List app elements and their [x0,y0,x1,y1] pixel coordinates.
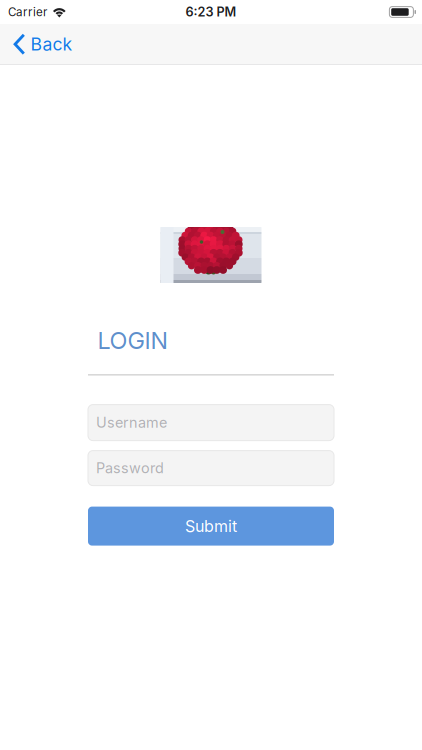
staticText: Password [96,459,164,477]
button[interactable]: Submit [88,507,334,546]
staticText: Carrier [8,5,47,19]
staticText: Back [30,34,72,55]
staticText: Submit [185,516,237,536]
staticText: Username [96,414,167,431]
button[interactable]: Back [0,24,84,64]
staticText: 6:23 PM [185,4,236,20]
staticText: LOGIN [97,326,167,355]
